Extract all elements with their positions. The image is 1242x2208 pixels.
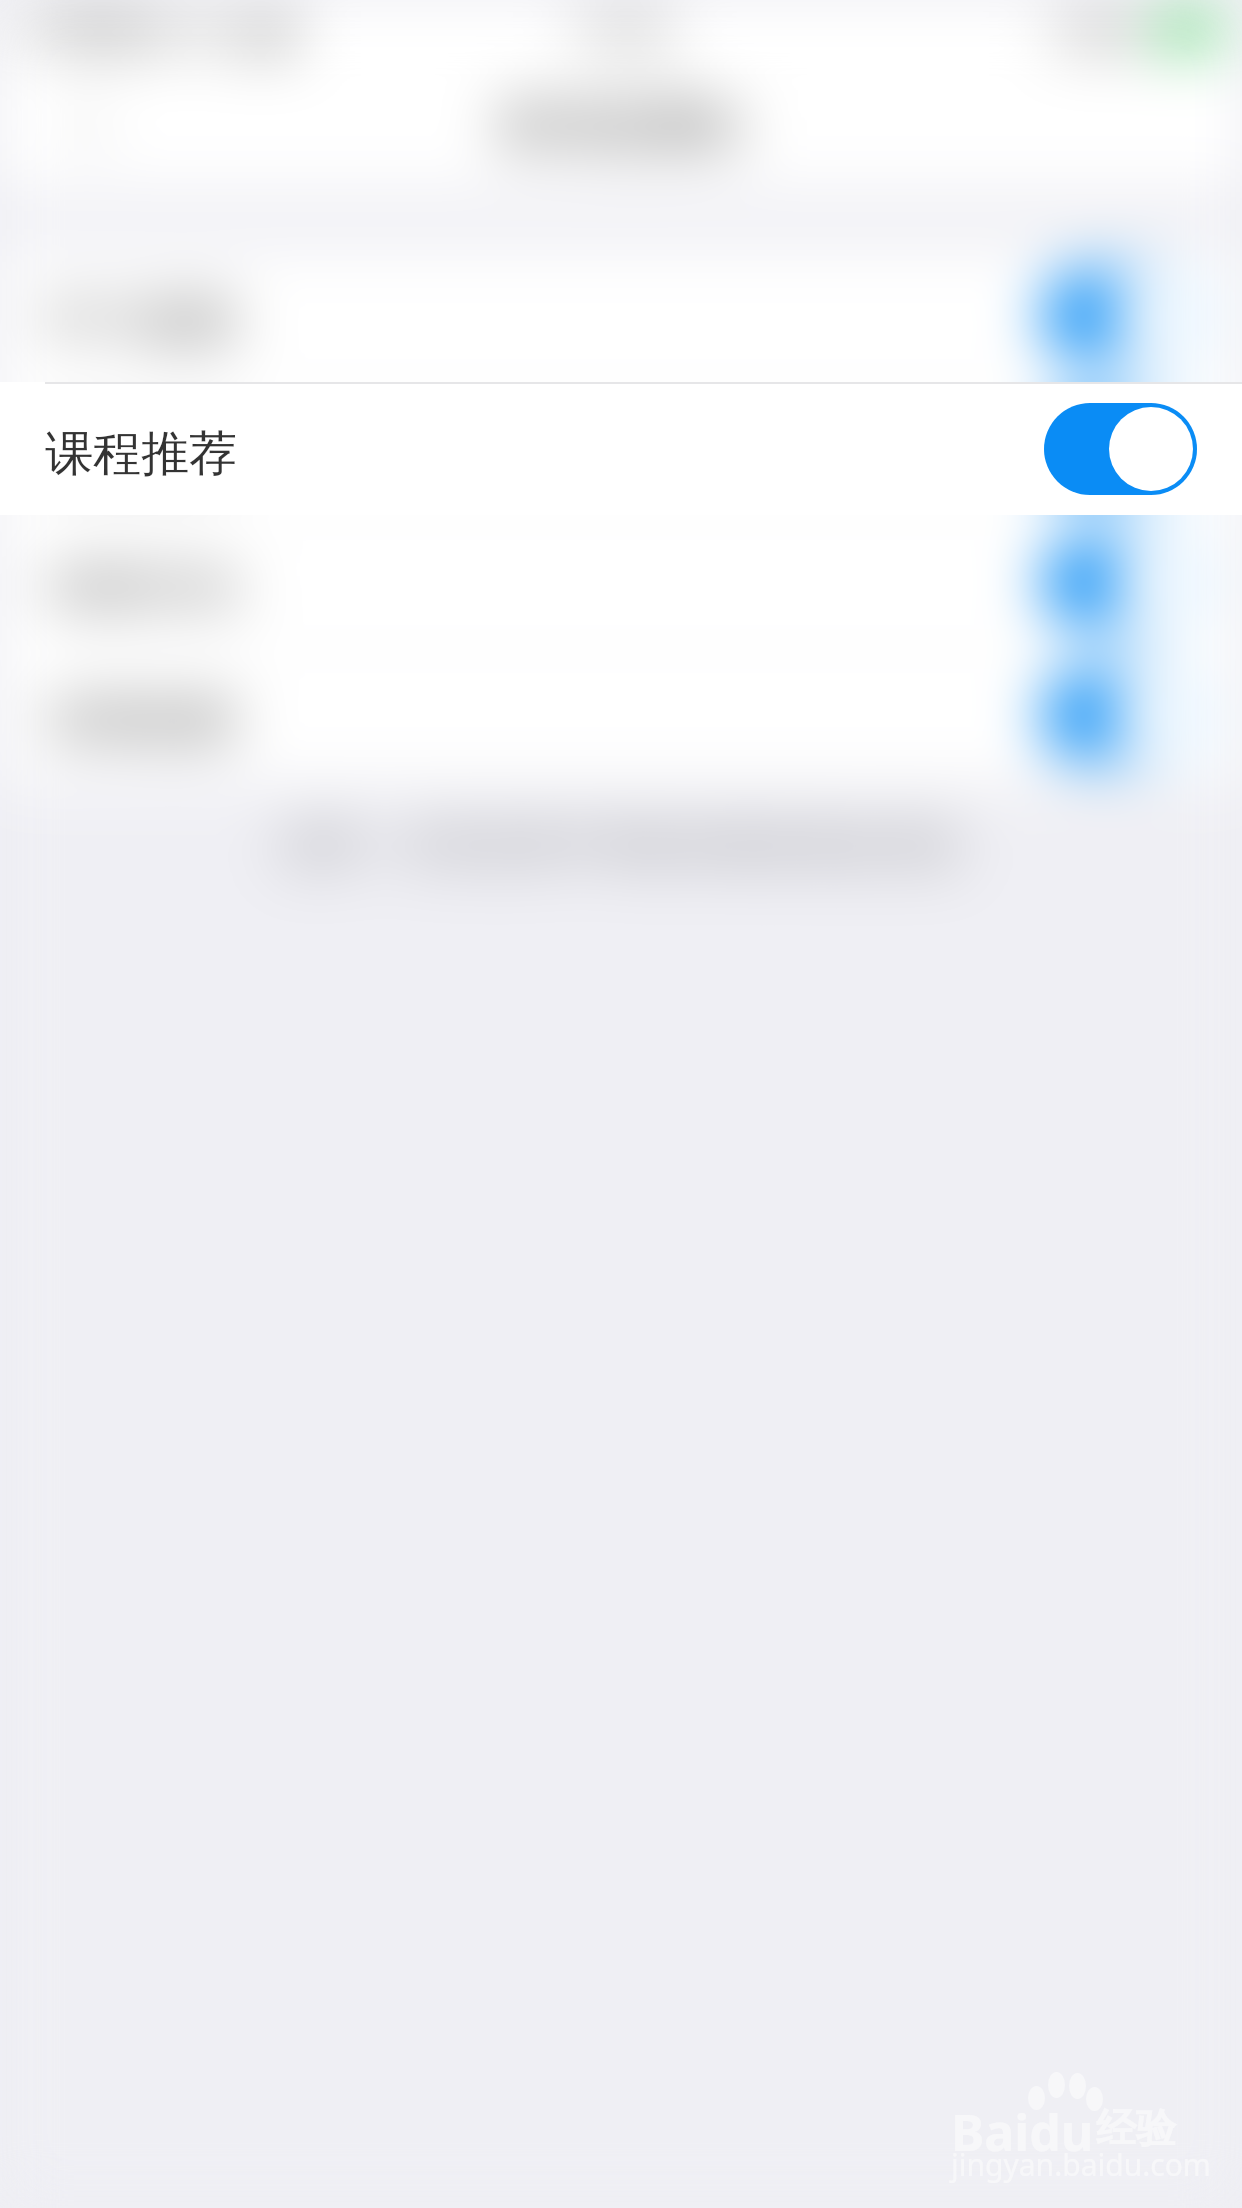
staticText: 课程推荐 bbox=[45, 424, 237, 484]
staticText: 优惠活动 bbox=[45, 557, 237, 617]
button[interactable]: Turn off bbox=[1044, 536, 1197, 628]
button[interactable]: 课程推荐 bbox=[0, 382, 1242, 515]
staticText: 课程推荐 bbox=[45, 424, 237, 484]
staticText: 中国移动 bbox=[24, 7, 176, 55]
staticText: 新消息通知 bbox=[501, 96, 741, 156]
button[interactable]: 优惠活动 bbox=[0, 515, 1242, 648]
button[interactable]: 课程推荐 bbox=[0, 382, 1242, 515]
button[interactable]: Turn off bbox=[1044, 403, 1197, 495]
button[interactable]: Turn off bbox=[1044, 669, 1197, 761]
staticText: 学习提醒 bbox=[45, 291, 237, 351]
staticText: jingyan.baidu.com bbox=[951, 2144, 1211, 2185]
button[interactable]: 直播提醒 bbox=[0, 648, 1242, 781]
button[interactable]: 学习提醒 bbox=[0, 249, 1242, 382]
button[interactable]: Turn off bbox=[1044, 403, 1197, 495]
staticText: Baidu bbox=[951, 2098, 1094, 2166]
staticText: 经验 bbox=[1096, 2103, 1176, 2153]
staticText: 100% bbox=[1048, 5, 1145, 57]
staticText: 直播提醒 bbox=[45, 690, 237, 750]
button[interactable]: Turn off bbox=[1044, 270, 1197, 362]
